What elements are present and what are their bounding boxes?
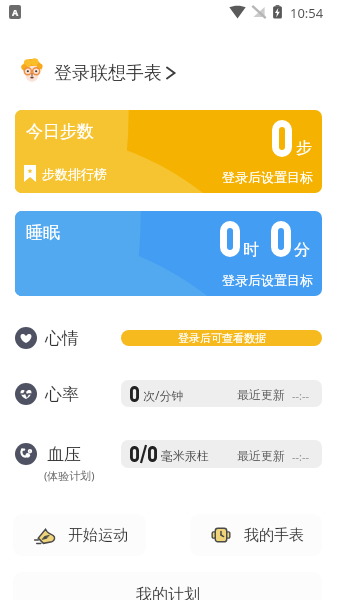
staticText: A	[12, 6, 19, 18]
staticText: 步	[296, 138, 312, 158]
button[interactable]: 今日步数	[15, 110, 322, 193]
staticText: 我的计划	[136, 585, 200, 600]
staticText: --:--	[292, 388, 310, 403]
staticText: 睡眠	[26, 222, 60, 243]
staticText: 登录联想手表	[54, 62, 162, 85]
staticText: 开始运动	[68, 526, 128, 545]
staticText: 10:54	[290, 4, 324, 22]
staticText: 血压	[47, 444, 81, 465]
button[interactable]: 血压	[15, 440, 322, 484]
staticText: 毫米汞柱	[161, 448, 209, 463]
staticText: 最近更新	[237, 448, 285, 463]
button[interactable]: 我的手表	[190, 514, 322, 556]
staticText: 时	[243, 240, 259, 260]
staticText: (体验计划)	[44, 468, 95, 483]
staticText: 分	[294, 240, 310, 260]
button[interactable]: 登录联想手表	[0, 52, 337, 90]
staticText: 步数排行榜	[42, 166, 107, 182]
button[interactable]: 睡眠	[15, 211, 322, 296]
staticText: 我的手表	[244, 526, 304, 545]
staticText: 最近更新	[237, 387, 285, 402]
staticText: 登录后设置目标	[222, 169, 313, 185]
staticText: --:--	[292, 449, 310, 464]
button[interactable]: 开始运动	[13, 514, 146, 556]
button[interactable]: 心情	[15, 327, 322, 349]
staticText: 登录后可查看数据	[178, 331, 266, 345]
staticText: 今日步数	[26, 121, 94, 142]
staticText: 心率	[45, 384, 79, 405]
button[interactable]: 我的计划	[13, 572, 322, 600]
staticText: 次/分钟	[143, 387, 184, 403]
button[interactable]: 心率	[15, 380, 322, 408]
staticText: 心情	[45, 328, 79, 349]
staticText: 登录后设置目标	[222, 272, 313, 288]
